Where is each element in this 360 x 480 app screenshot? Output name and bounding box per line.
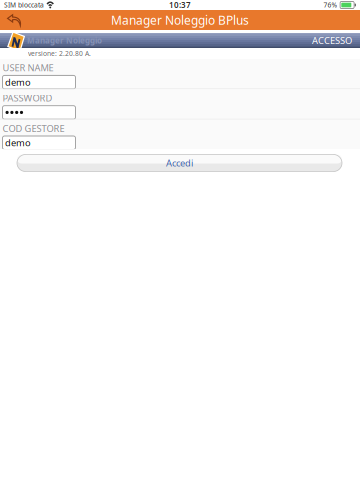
staticText: Manager Noleggio (27, 35, 102, 46)
button[interactable]: PASSWORD (0, 89, 360, 119)
staticText: PASSWORD (2, 92, 52, 104)
button[interactable]: Indietro (0, 10, 27, 29)
staticText: demo (5, 76, 31, 88)
staticText: demo (5, 136, 31, 149)
staticText: versione: 2.20.80 A. (28, 49, 91, 58)
staticText: 10:37 (169, 0, 191, 10)
button[interactable]: Accedi (17, 154, 342, 171)
staticText: SIM bloccata (4, 1, 44, 9)
staticText: 76% (324, 1, 338, 9)
staticText: COD GESTORE (2, 122, 64, 134)
staticText: Accedi (166, 157, 193, 169)
button[interactable]: USER NAME (0, 59, 360, 88)
staticText: Manager Noleggio BPlus (111, 12, 249, 28)
staticText: ACCESSO (312, 34, 352, 47)
button[interactable]: COD GESTORE (0, 120, 360, 149)
staticText: USER NAME (2, 61, 53, 74)
